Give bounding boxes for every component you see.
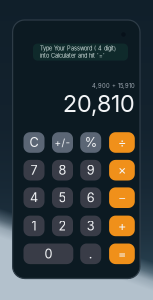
staticText: +/- [54,136,70,149]
button[interactable]: 2 [52,216,73,236]
button[interactable]: C [23,132,44,153]
staticText: 9 [87,162,95,178]
staticText: 20,810 [63,89,135,118]
button[interactable]: 1 [23,216,44,236]
staticText: + [118,218,126,233]
staticText: C [29,135,38,150]
button[interactable]: 5 [52,187,73,208]
staticText: 7 [30,162,37,178]
button[interactable]: . [80,243,101,264]
staticText: Type Your Password ( 4 digit) [40,45,116,52]
button[interactable]: 0 [23,243,73,264]
button[interactable]: × [109,160,135,180]
button[interactable]: − [109,187,135,208]
button[interactable]: 3 [80,216,101,236]
staticText: 4,900 + 15,910 [92,82,135,89]
button[interactable]: 7 [23,160,44,180]
button[interactable]: ÷ [109,132,135,153]
staticText: into Calculater and hit '=' [40,52,105,59]
staticText: 3 [87,218,95,233]
staticText: 1 [31,218,36,233]
staticText: − [118,190,126,205]
button[interactable]: 9 [80,160,101,180]
button[interactable]: = [109,243,135,264]
staticText: . [89,246,93,261]
staticText: 8 [58,162,66,178]
staticText: 6 [87,190,95,205]
staticText: % [85,135,97,150]
staticText: 0 [44,246,52,261]
button[interactable]: 4 [23,187,44,208]
button[interactable]: 8 [52,160,73,180]
staticText: × [118,162,126,178]
staticText: 4 [30,190,38,205]
button[interactable]: % [80,132,101,153]
staticText: 5 [58,190,66,205]
button[interactable]: +/- [52,132,73,153]
button[interactable]: 6 [80,187,101,208]
button[interactable]: + [109,216,135,236]
staticText: = [118,246,126,261]
staticText: ÷ [118,135,126,150]
staticText: 2 [58,218,66,233]
